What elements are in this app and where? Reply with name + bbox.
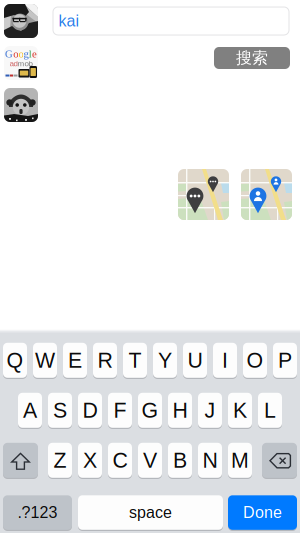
staticText: V	[143, 448, 157, 472]
staticText: R	[97, 348, 112, 372]
staticText: o	[18, 48, 23, 60]
staticText: Done	[243, 504, 282, 521]
button[interactable]: B	[168, 442, 192, 479]
button[interactable]: kai	[53, 7, 289, 35]
button[interactable]: V	[138, 442, 162, 479]
staticText: S	[53, 398, 67, 422]
staticText: J	[204, 398, 215, 422]
staticText: A	[23, 398, 37, 422]
button[interactable]: A	[18, 392, 42, 429]
staticText: G	[141, 398, 158, 422]
staticText: Z	[53, 448, 66, 472]
staticText: space	[129, 504, 172, 521]
staticText: mob	[17, 59, 32, 68]
button[interactable]: 搜索	[214, 47, 290, 69]
staticText: .?123	[17, 504, 57, 521]
button[interactable]: F	[108, 392, 132, 429]
staticText: I	[222, 348, 228, 372]
button[interactable]: T	[123, 342, 147, 379]
staticText: K	[233, 398, 247, 422]
staticText: F	[113, 398, 126, 422]
button[interactable]: Delete	[262, 442, 297, 479]
button[interactable]: C	[108, 442, 132, 479]
staticText: X	[83, 448, 97, 472]
staticText: B	[173, 448, 187, 472]
button[interactable]: P	[273, 342, 297, 379]
staticText: ad	[9, 59, 17, 68]
staticText: C	[112, 448, 127, 472]
staticText: kai	[58, 12, 79, 30]
button[interactable]: E	[63, 342, 87, 379]
staticText: Y	[158, 348, 172, 372]
button[interactable]: H	[168, 392, 192, 429]
button[interactable]: X	[78, 442, 102, 479]
button[interactable]: M	[228, 442, 252, 479]
button[interactable]: N	[198, 442, 222, 479]
staticText: O	[246, 348, 263, 372]
staticText: W	[35, 348, 55, 372]
button[interactable]: Y	[153, 342, 177, 379]
staticText: Q	[6, 348, 23, 372]
button[interactable]: K	[228, 392, 252, 429]
staticText: E	[68, 348, 82, 372]
button[interactable]: G	[138, 392, 162, 429]
staticText: H	[172, 398, 187, 422]
staticText: e	[32, 48, 37, 60]
button[interactable]: S	[48, 392, 72, 429]
staticText: g	[24, 48, 29, 60]
button[interactable]: Shift	[3, 442, 38, 479]
staticText: P	[278, 348, 292, 372]
button[interactable]: Z	[48, 442, 72, 479]
staticText: U	[187, 348, 202, 372]
button[interactable]: Map with blue pins	[241, 169, 292, 220]
button[interactable]: space	[78, 494, 223, 531]
staticText: N	[202, 448, 217, 472]
button[interactable]: Photo of a man	[4, 4, 38, 38]
button[interactable]: .?123	[3, 494, 72, 531]
staticText: G	[5, 48, 13, 60]
button[interactable]: D	[78, 392, 102, 429]
button[interactable]: Map with grey pins	[178, 169, 229, 220]
staticText: L	[264, 398, 276, 422]
button[interactable]: Q	[3, 342, 27, 379]
button[interactable]: R	[93, 342, 117, 379]
staticText: T	[128, 348, 141, 372]
button[interactable]: O	[243, 342, 267, 379]
button[interactable]: U	[183, 342, 207, 379]
button[interactable]: Photo of a child	[4, 88, 38, 122]
button[interactable]: L	[258, 392, 282, 429]
staticText: 搜索	[236, 48, 268, 68]
staticText: M	[231, 448, 249, 472]
button[interactable]: Google AdMob	[4, 46, 38, 80]
button[interactable]: Done	[228, 494, 297, 531]
staticText: l	[29, 48, 32, 60]
staticText: D	[82, 398, 97, 422]
button[interactable]: W	[33, 342, 57, 379]
button[interactable]: I	[213, 342, 237, 379]
staticText: o	[13, 48, 18, 60]
button[interactable]: J	[198, 392, 222, 429]
